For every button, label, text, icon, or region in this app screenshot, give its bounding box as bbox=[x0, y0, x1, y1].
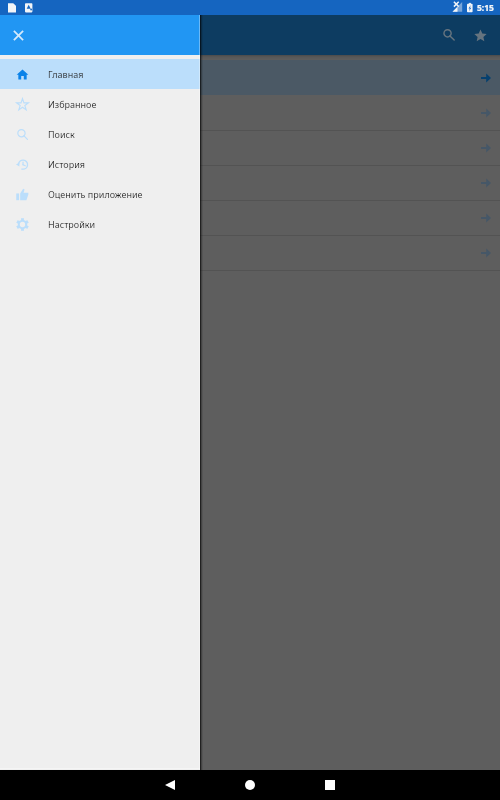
button[interactable] bbox=[0, 165, 500, 200]
button[interactable]: Recents bbox=[315, 770, 345, 800]
staticText: Оценить приложение bbox=[48, 188, 143, 200]
button[interactable]: Настройки bbox=[0, 209, 200, 239]
button[interactable]: История bbox=[0, 149, 200, 179]
staticText: Настройки bbox=[48, 218, 96, 230]
button[interactable] bbox=[0, 235, 500, 270]
button[interactable] bbox=[0, 130, 500, 165]
staticText: История bbox=[48, 158, 85, 170]
button[interactable]: Избранное bbox=[0, 89, 200, 119]
button[interactable]: Оценить приложение bbox=[0, 179, 200, 209]
button[interactable]: Favorites bbox=[464, 19, 496, 51]
button[interactable] bbox=[0, 200, 500, 235]
button[interactable]: Search bbox=[433, 19, 465, 51]
button[interactable]: Home bbox=[235, 770, 265, 800]
button[interactable] bbox=[0, 95, 500, 130]
button[interactable] bbox=[0, 60, 500, 95]
staticText: Главная bbox=[48, 68, 84, 80]
staticText: Избранное bbox=[48, 98, 97, 110]
button[interactable]: Close drawer bbox=[2, 19, 34, 51]
button[interactable]: Back bbox=[155, 770, 185, 800]
staticText: 5:15 bbox=[477, 2, 494, 14]
staticText: Поиск bbox=[48, 128, 75, 140]
button[interactable]: Поиск bbox=[0, 119, 200, 149]
button[interactable]: Главная bbox=[0, 59, 200, 89]
